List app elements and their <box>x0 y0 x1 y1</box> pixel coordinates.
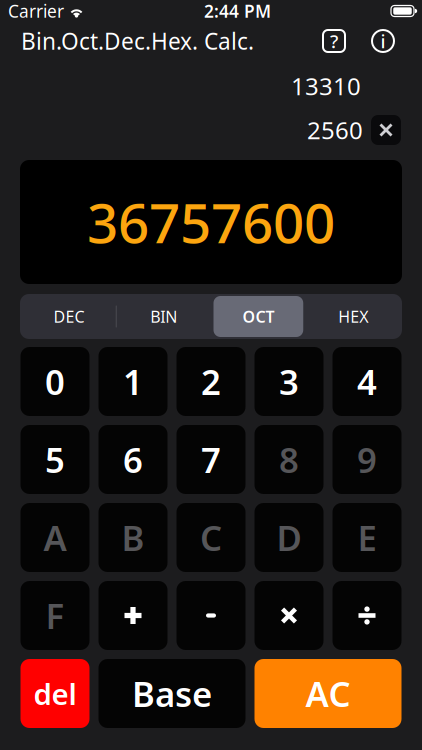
button[interactable]: Base <box>98 659 245 728</box>
button[interactable]: 1 <box>98 347 167 416</box>
staticText: ? <box>330 29 338 53</box>
staticText: Carrier <box>8 0 64 22</box>
staticText: D <box>276 514 301 560</box>
staticText: F <box>45 592 64 638</box>
button[interactable]: 6 <box>98 425 167 494</box>
button[interactable]: BIN <box>117 296 211 337</box>
staticText: 36757600 <box>87 186 335 258</box>
staticText: BIN <box>150 306 177 327</box>
staticText: 2 <box>201 358 221 404</box>
staticText: OCT <box>242 306 274 327</box>
staticText: 4 <box>357 358 377 404</box>
button[interactable]: Minus <box>176 581 245 650</box>
button[interactable]: F <box>20 581 89 650</box>
staticText: Bin.Oct.Dec.Hex. Calc. <box>21 26 254 56</box>
staticText: AC <box>305 670 350 716</box>
button[interactable]: E <box>332 503 401 572</box>
button[interactable]: Help <box>319 26 349 56</box>
staticText: E <box>357 514 376 560</box>
staticText: 7 <box>201 436 221 482</box>
staticText: 2:44 PM <box>204 0 271 22</box>
button[interactable]: OCT <box>211 296 305 337</box>
button[interactable]: 3 <box>254 347 323 416</box>
button[interactable]: 0 <box>20 347 89 416</box>
button[interactable]: 7 <box>176 425 245 494</box>
button[interactable]: B <box>98 503 167 572</box>
button[interactable]: 9 <box>332 425 401 494</box>
button[interactable]: Info <box>368 26 398 56</box>
staticText: B <box>121 514 144 560</box>
staticText: DEC <box>53 306 84 327</box>
button[interactable]: C <box>176 503 245 572</box>
button[interactable]: Multiply <box>371 115 401 145</box>
staticText: 5 <box>45 436 65 482</box>
staticText: Base <box>132 670 212 716</box>
button[interactable]: 8 <box>254 425 323 494</box>
button[interactable]: 2 <box>176 347 245 416</box>
staticText: A <box>43 514 66 560</box>
staticText: 3 <box>279 358 299 404</box>
staticText: 9 <box>357 436 377 482</box>
staticText: del <box>33 674 76 713</box>
button[interactable]: A <box>20 503 89 572</box>
button[interactable]: AC <box>254 659 401 728</box>
staticText: 6 <box>123 436 143 482</box>
staticText: 0 <box>45 358 65 404</box>
button[interactable]: HEX <box>306 296 400 337</box>
button[interactable]: del <box>20 659 89 728</box>
button[interactable]: 5 <box>20 425 89 494</box>
staticText: 2560 <box>307 114 363 146</box>
staticText: 13310 <box>291 70 361 102</box>
button[interactable]: Divide <box>332 581 401 650</box>
staticText: C <box>200 514 222 560</box>
button[interactable]: Multiply <box>254 581 323 650</box>
button[interactable]: DEC <box>22 296 116 337</box>
button[interactable]: D <box>254 503 323 572</box>
staticText: 8 <box>279 436 299 482</box>
button[interactable]: 4 <box>332 347 401 416</box>
staticText: HEX <box>338 306 368 327</box>
staticText: i <box>380 29 385 53</box>
staticText: 1 <box>123 358 143 404</box>
button[interactable]: Plus <box>98 581 167 650</box>
